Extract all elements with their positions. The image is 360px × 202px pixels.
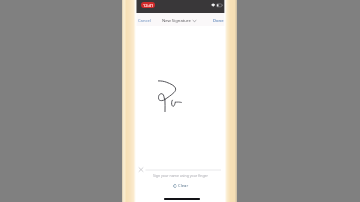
button[interactable]: Cancel [138,18,151,24]
button[interactable]: Done [213,18,224,24]
staticText: New Signature [162,18,191,24]
button[interactable]: New Signature [162,18,196,24]
staticText: Clear [178,183,189,189]
staticText: Cancel [138,18,151,24]
staticText: 12:41 [143,3,154,8]
staticText: Done [213,18,224,24]
button[interactable]: Clear [170,182,192,190]
staticText: Sign your name using your finger [153,173,208,178]
